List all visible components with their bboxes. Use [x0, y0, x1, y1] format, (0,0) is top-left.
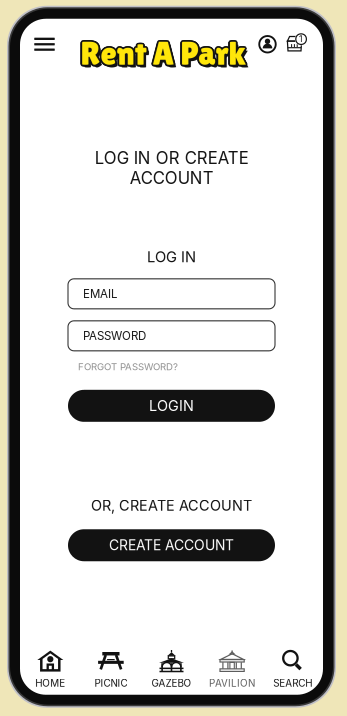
staticText: Rent A Park	[82, 33, 248, 71]
staticText: Rent A Park	[79, 33, 245, 71]
staticText: LOG IN	[147, 248, 196, 266]
staticText: 1	[299, 34, 303, 44]
staticText: GAZEBO	[151, 677, 191, 689]
staticText: CREATE ACCOUNT	[109, 537, 234, 554]
staticText: Rent A Park	[80, 34, 246, 72]
staticText: Rent A Park	[81, 36, 247, 74]
staticText: Rent A Park	[79, 34, 245, 71]
staticText: PICNIC	[94, 677, 127, 689]
staticText: OR, CREATE ACCOUNT	[91, 497, 252, 514]
staticText: Rent A Park	[80, 33, 246, 70]
staticText: Rent A Park	[79, 36, 245, 73]
button[interactable]: EMAIL	[68, 279, 275, 309]
button[interactable]: Menu	[30, 29, 58, 59]
staticText: Rent A Park	[81, 33, 247, 70]
button[interactable]: Account	[257, 31, 277, 57]
staticText: EMAIL	[83, 287, 117, 301]
button[interactable]: Cart	[284, 31, 305, 57]
staticText: Rent A Park	[82, 36, 248, 73]
button[interactable]: PICNIC	[81, 649, 141, 690]
staticText: SEARCH	[273, 677, 312, 689]
button[interactable]: FORGOT PASSWORD?	[68, 361, 275, 373]
staticText: Rent A Park	[83, 37, 249, 75]
staticText: Rent A Park	[79, 34, 245, 72]
button[interactable]: HOME	[20, 649, 81, 690]
staticText: Rent A Park	[80, 36, 246, 74]
staticText: LOG IN OR CREATE ACCOUNT	[94, 148, 248, 188]
staticText: PASSWORD	[83, 329, 146, 343]
button[interactable]: GAZEBO	[141, 649, 202, 690]
staticText: Rent A Park	[79, 35, 245, 73]
button[interactable]: PAVILION	[202, 649, 262, 690]
button[interactable]: CREATE ACCOUNT	[68, 529, 275, 561]
staticText: HOME	[35, 677, 65, 689]
staticText: FORGOT PASSWORD?	[78, 361, 178, 373]
staticText: Rent A Park	[82, 35, 248, 73]
button[interactable]: PASSWORD	[68, 321, 275, 351]
staticText: LOGIN	[149, 397, 194, 414]
button[interactable]: LOGIN	[68, 390, 275, 422]
button[interactable]: SEARCH	[262, 649, 323, 690]
staticText: Rent A Park	[82, 34, 248, 72]
staticText: PAVILION	[209, 677, 255, 689]
staticText: Rent A Park	[82, 34, 248, 71]
